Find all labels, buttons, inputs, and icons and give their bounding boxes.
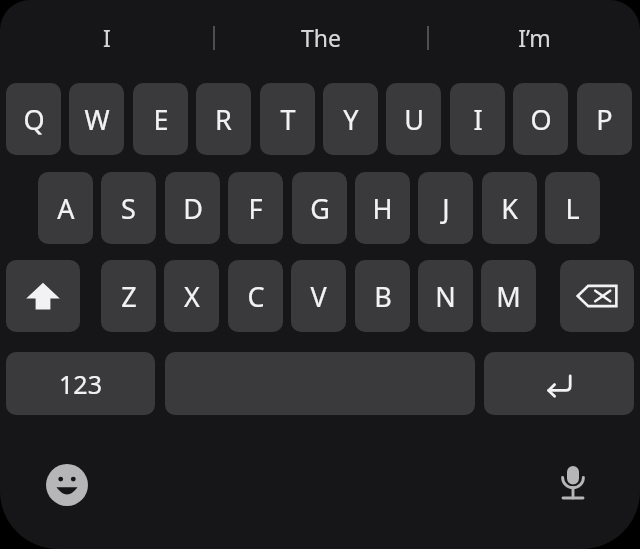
staticText: I [473,101,483,138]
staticText: R [215,101,232,138]
button[interactable]: O [513,83,568,155]
button[interactable]: Z [101,260,156,332]
button[interactable]: Voice input [541,450,605,514]
staticText: T [280,101,296,138]
staticText: M [496,278,521,315]
staticText: H [372,190,393,227]
staticText: W [84,101,110,138]
button[interactable]: V [291,260,346,332]
button[interactable]: Backspace [560,260,634,332]
button[interactable]: C [228,260,283,332]
staticText: B [374,278,392,315]
button[interactable]: E [133,83,188,155]
staticText: O [530,101,552,138]
button[interactable]: U [386,83,441,155]
staticText: I [103,22,111,53]
button[interactable]: N [418,260,473,332]
staticText: I’m [518,22,551,53]
staticText: The [301,22,341,53]
staticText: U [404,101,424,138]
staticText: Y [343,101,359,138]
staticText: A [57,190,75,227]
button[interactable]: Enter [484,352,634,415]
staticText: V [310,278,327,315]
button[interactable]: L [545,172,600,244]
button[interactable]: M [481,260,536,332]
button[interactable]: The [214,0,427,74]
staticText: C [247,278,265,315]
button[interactable]: Q [6,83,61,155]
button[interactable]: Shift [6,260,80,332]
button[interactable]: I [0,0,213,74]
button[interactable]: G [292,172,347,244]
staticText: G [310,190,330,227]
button[interactable]: 123 [6,352,155,415]
button[interactable]: P [577,83,632,155]
button[interactable]: J [418,172,473,244]
button[interactable]: B [355,260,410,332]
staticText: X [184,278,200,315]
button[interactable]: Y [323,83,378,155]
button[interactable]: I [450,83,505,155]
button[interactable]: R [196,83,251,155]
staticText: P [596,101,613,138]
button[interactable]: T [260,83,315,155]
staticText: J [442,190,450,227]
staticText: L [565,190,580,227]
staticText: Z [121,278,137,315]
button[interactable]: H [355,172,410,244]
button[interactable]: K [482,172,537,244]
staticText: E [153,101,169,138]
staticText: Q [23,101,45,138]
button[interactable]: Emoji [35,453,99,517]
button[interactable]: D [165,172,220,244]
button[interactable]: W [69,83,124,155]
button[interactable]: A [38,172,93,244]
button[interactable]: I’m [428,0,640,74]
staticText: K [501,190,518,227]
staticText: N [435,278,456,315]
staticText: F [248,190,263,227]
staticText: S [121,190,136,227]
button[interactable]: X [164,260,219,332]
button[interactable]: F [228,172,283,244]
staticText: 123 [59,367,102,401]
staticText: D [183,190,203,227]
button[interactable]: S [101,172,156,244]
